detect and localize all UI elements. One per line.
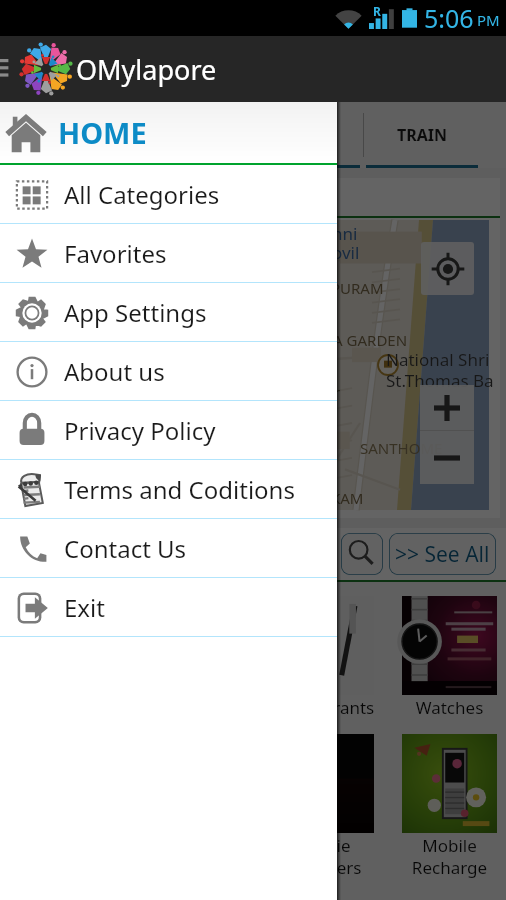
button[interactable]: Zoom in (420, 385, 474, 430)
button[interactable]: About us (0, 342, 337, 401)
staticText: App Settings (64, 296, 207, 329)
button[interactable]: Contact Us (0, 519, 337, 578)
staticText: IA GARDEN (328, 330, 408, 350)
button[interactable]: Zoom out (420, 431, 474, 484)
button[interactable]: Movie Theaters (265, 734, 388, 879)
staticText: Watches (388, 696, 506, 719)
button[interactable]: TRAIN (363, 102, 482, 168)
button[interactable]: Exit (0, 578, 337, 637)
button[interactable]: Search (341, 533, 383, 575)
staticText: Favorites (64, 237, 167, 270)
staticText: Terms and Coditions (64, 473, 295, 506)
button[interactable]: Open navigation drawer (0, 36, 20, 102)
button[interactable]: Watches (388, 596, 506, 719)
staticText: OMylapore (76, 51, 217, 88)
staticText: Contact Us (64, 532, 187, 565)
button[interactable]: App Settings (0, 283, 337, 342)
staticText: Restaurants (265, 696, 388, 719)
button[interactable]: Mobile Recharge (388, 734, 506, 879)
staticText: Exit (64, 591, 105, 624)
staticText: R (373, 3, 381, 19)
button[interactable]: Favorites (0, 224, 337, 283)
button[interactable]: My location (421, 242, 474, 295)
staticText: All Categories (64, 178, 220, 211)
staticText: >> See All (395, 540, 490, 569)
button[interactable]: Terms and Coditions (0, 460, 337, 519)
button[interactable]: Restaurants (265, 596, 388, 719)
staticText: National Shri St.Thomas Ba (386, 348, 494, 392)
staticText: TRAIN (397, 124, 448, 146)
staticText: PURAM (331, 278, 384, 298)
staticText: MOVIES (30, 124, 92, 146)
staticText: r (334, 382, 341, 402)
button[interactable]: MOVIES (0, 102, 121, 168)
button[interactable]: Gifts (142, 596, 265, 719)
staticText: Mobile Recharge (388, 834, 506, 879)
button[interactable]: Privacy Policy (0, 401, 337, 460)
staticText: Privacy Policy (64, 414, 216, 447)
staticText: PM (477, 10, 500, 30)
staticText: KAM (331, 488, 364, 508)
button[interactable]: BUS (121, 102, 363, 168)
staticText: Movie Theaters (265, 834, 388, 879)
button[interactable]: HOME (0, 102, 337, 163)
button[interactable]: Flowers (19, 596, 142, 719)
staticText: SANTHOME (360, 438, 443, 458)
button[interactable]: All Categories (0, 165, 337, 224)
staticText: HOME (58, 113, 147, 152)
staticText: About us (64, 355, 165, 388)
staticText: nni ovil (332, 222, 360, 264)
button[interactable]: >> See All (389, 533, 496, 575)
staticText: 5:06 (424, 1, 474, 35)
